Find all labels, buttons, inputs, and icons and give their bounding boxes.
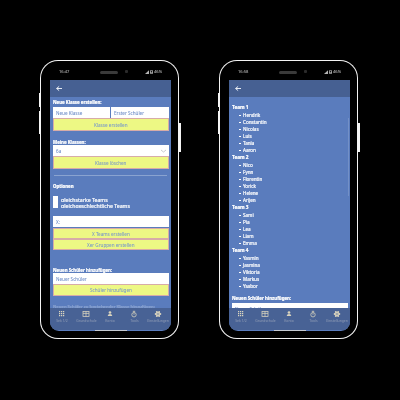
staticText: 46% xyxy=(154,69,163,75)
staticText: Hendrik xyxy=(243,112,261,118)
button[interactable]: Klasse erstellen xyxy=(54,119,168,130)
staticText: Grundschule xyxy=(76,318,97,323)
staticText: Viktoria xyxy=(243,269,260,275)
staticText: Klasse erstellen xyxy=(94,122,128,128)
staticText: Sami xyxy=(243,212,254,218)
staticText: Sek 1/2 xyxy=(56,318,68,323)
button[interactable]: Grundschule xyxy=(253,311,277,323)
button[interactable]: gleichgeschlechtliche Teams xyxy=(53,202,168,208)
staticText: Neue Klasse erstellen: xyxy=(53,99,102,105)
staticText: Pia xyxy=(243,219,250,225)
staticText: X: xyxy=(56,219,60,225)
staticText: Helene xyxy=(243,190,259,196)
staticText: Neuen Schüler hinzufügen: xyxy=(53,267,113,273)
button[interactable]: Neue Klasse xyxy=(53,107,110,118)
staticText: Neuer Schüler xyxy=(56,276,87,282)
button[interactable]: Schüler hinzufügen xyxy=(54,285,168,295)
staticText: 46% xyxy=(333,69,342,75)
button[interactable]: Konto xyxy=(277,311,301,323)
staticText: Lea xyxy=(243,226,251,232)
staticText: Florentin xyxy=(243,176,263,182)
staticText: Schüler hinzufügen xyxy=(90,287,132,293)
button[interactable]: Tools xyxy=(301,311,325,323)
staticText: Nicolas xyxy=(243,126,259,132)
button[interactable]: Back xyxy=(53,83,64,94)
staticText: Erster Schüler xyxy=(114,110,145,116)
staticText: Tania xyxy=(243,140,255,146)
staticText: Yorick xyxy=(243,183,256,189)
staticText: gleichstarke Teams xyxy=(61,196,108,202)
button[interactable]: Tools xyxy=(122,311,146,323)
button[interactable]: X Teams erstellen xyxy=(54,229,168,238)
button[interactable]: Neuer Schüler xyxy=(53,273,169,284)
button[interactable]: gleichstarke Teams xyxy=(53,196,168,202)
button[interactable]: X: xyxy=(53,216,169,227)
button[interactable]: Erster Schüler xyxy=(111,107,169,118)
staticText: Jasmina xyxy=(243,262,260,268)
staticText: Neuer Schüler xyxy=(235,306,266,312)
staticText: Einstellungen xyxy=(147,318,169,323)
staticText: Tools xyxy=(130,318,139,323)
staticText: Einstellungen xyxy=(326,318,348,323)
staticText: Constantin xyxy=(243,119,267,125)
staticText: 6a xyxy=(56,148,62,154)
staticText: Markus xyxy=(243,276,260,282)
staticText: 16:58 xyxy=(238,69,249,75)
button[interactable]: Klasse löschen xyxy=(54,157,168,168)
staticText: Nico xyxy=(243,162,253,168)
button[interactable]: Xer Gruppen erstellen xyxy=(54,240,168,249)
staticText: Konto xyxy=(284,318,294,323)
button[interactable]: Konto xyxy=(98,311,122,323)
staticText: Sek 1/2 xyxy=(235,318,247,323)
button[interactable]: Einstellungen xyxy=(325,311,349,323)
staticText: 16:47 xyxy=(59,69,70,75)
staticText: Emma xyxy=(243,240,257,246)
staticText: Luis xyxy=(243,133,252,139)
staticText: Arijen xyxy=(243,197,256,203)
button[interactable]: Back xyxy=(232,83,243,94)
staticText: Ysabor xyxy=(243,283,258,289)
staticText: Team 2 xyxy=(232,154,249,160)
staticText: Neuen Schüler zu bestehender Klasse hinz… xyxy=(53,304,155,310)
staticText: Fynn xyxy=(243,169,254,175)
staticText: Liam xyxy=(243,233,254,239)
staticText: Meine Klassen: xyxy=(53,139,86,145)
staticText: X Teams erstellen xyxy=(92,231,130,237)
staticText: Xer Gruppen erstellen xyxy=(87,242,135,248)
staticText: Grundschule xyxy=(255,318,276,323)
button[interactable]: Sek 1/2 xyxy=(50,311,74,323)
staticText: Neue Klasse xyxy=(56,110,83,116)
staticText: gleichgeschlechtliche Teams xyxy=(61,202,130,208)
staticText: Konto xyxy=(105,318,115,323)
button[interactable]: Sek 1/2 xyxy=(229,311,253,323)
staticText: Team 4 xyxy=(232,247,249,253)
button[interactable]: 6a xyxy=(53,145,169,156)
staticText: Team 1 xyxy=(232,104,249,110)
button[interactable]: Grundschule xyxy=(74,311,98,323)
staticText: Yasmin xyxy=(243,255,259,261)
staticText: Neuen Schüler hinzufügen: xyxy=(232,295,292,301)
staticText: Aaron xyxy=(243,147,256,153)
staticText: Optionen xyxy=(53,183,74,189)
staticText: Klasse löschen xyxy=(95,160,127,166)
staticText: Team 3 xyxy=(232,204,249,210)
button[interactable]: Einstellungen xyxy=(146,311,170,323)
button[interactable]: Neuer Schüler xyxy=(232,303,348,314)
staticText: Tools xyxy=(309,318,318,323)
